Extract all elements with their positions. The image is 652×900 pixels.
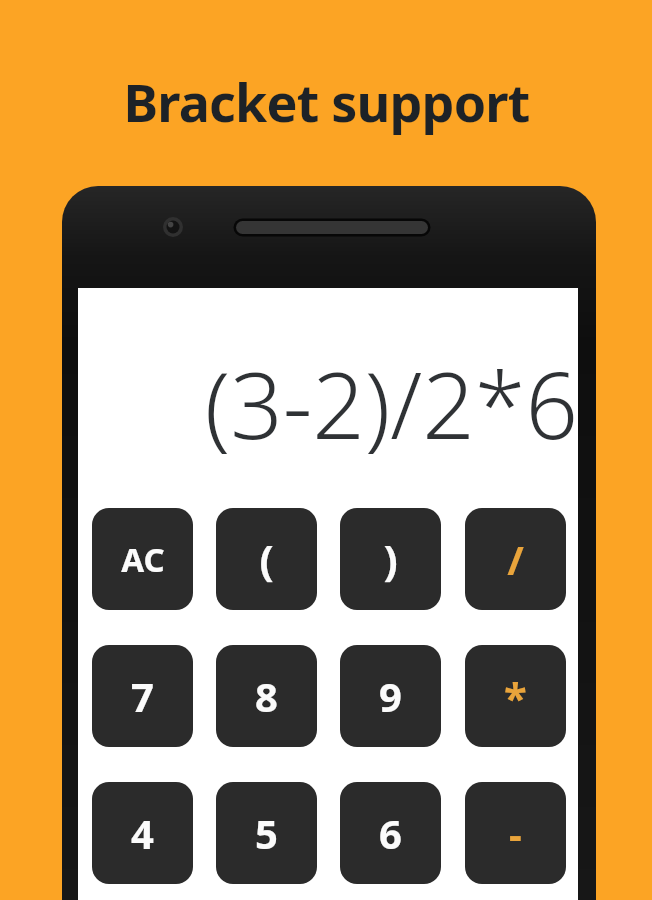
button[interactable]: Seven <box>92 645 193 747</box>
button[interactable]: Four <box>92 782 193 884</box>
button[interactable]: Five <box>216 782 317 884</box>
button[interactable]: Nine <box>340 645 441 747</box>
staticText: - <box>509 806 522 860</box>
staticText: 4 <box>131 806 154 860</box>
staticText: * <box>504 668 527 725</box>
staticText: 6 <box>379 806 402 860</box>
button[interactable]: Divide <box>465 508 566 610</box>
staticText: ) <box>383 531 398 588</box>
button[interactable]: All clear <box>92 508 193 610</box>
button[interactable]: Eight <box>216 645 317 747</box>
button[interactable]: Subtract <box>465 782 566 884</box>
staticText: 9 <box>379 669 402 723</box>
staticText: 8 <box>255 669 278 723</box>
staticText: ( <box>259 531 274 588</box>
staticText: (3-2)/2*6 <box>204 341 578 466</box>
button[interactable]: Close bracket <box>340 508 441 610</box>
staticText: Bracket support <box>123 66 530 137</box>
staticText: / <box>507 532 524 586</box>
button[interactable]: Six <box>340 782 441 884</box>
staticText: 5 <box>255 806 278 860</box>
staticText: 7 <box>131 669 154 723</box>
button[interactable]: Multiply <box>465 645 566 747</box>
button[interactable]: Open bracket <box>216 508 317 610</box>
staticText: AC <box>121 537 165 582</box>
